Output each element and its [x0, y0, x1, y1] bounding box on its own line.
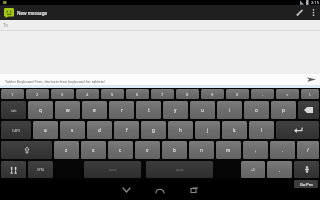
- button[interactable]: l: [249, 121, 274, 139]
- button[interactable]: tab: [1, 101, 26, 119]
- button[interactable]: -: [251, 89, 274, 99]
- staticText: New message: [17, 10, 48, 16]
- staticText: m: [226, 147, 231, 153]
- button[interactable]: =: [276, 89, 299, 99]
- staticText: 5: [111, 92, 114, 97]
- button[interactable]: 2: [26, 89, 49, 99]
- button[interactable]: e: [82, 101, 107, 119]
- button[interactable]: \: [301, 89, 319, 99]
- button[interactable]: z: [54, 141, 79, 159]
- button[interactable]: :-): [241, 161, 265, 178]
- staticText: a: [44, 127, 47, 133]
- button[interactable]: 5: [101, 89, 124, 99]
- button[interactable]: Messaging app: [4, 8, 14, 18]
- button[interactable]: n: [189, 141, 214, 159]
- button[interactable]: 9: [201, 89, 224, 99]
- button[interactable]: r: [109, 101, 134, 119]
- staticText: d: [98, 127, 101, 133]
- button[interactable]: g: [141, 121, 166, 139]
- button[interactable]: 3: [51, 89, 74, 99]
- staticText: =: [286, 92, 289, 97]
- button[interactable]: Voice input: [1, 161, 26, 178]
- staticText: r: [121, 107, 123, 113]
- button[interactable]: Attach file: [291, 5, 307, 20]
- staticText: 2: [36, 92, 39, 97]
- button[interactable]: Go Pro: [294, 180, 318, 188]
- staticText: c: [119, 147, 122, 153]
- staticText: 2:15: [311, 0, 319, 5]
- staticText: 0: [236, 92, 239, 97]
- button[interactable]: p: [271, 101, 296, 119]
- button[interactable]: u: [190, 101, 215, 119]
- button[interactable]: s: [60, 121, 85, 139]
- button[interactable]: 4: [76, 89, 99, 99]
- button[interactable]: 7: [151, 89, 174, 99]
- staticText: b: [173, 147, 176, 153]
- button[interactable]: t: [136, 101, 161, 119]
- button[interactable]: 8: [176, 89, 199, 99]
- staticText: .: [282, 147, 284, 153]
- staticText: q: [39, 107, 42, 113]
- button[interactable]: v: [135, 141, 160, 159]
- button[interactable]: Resize keyboard: [294, 161, 319, 178]
- button[interactable]: a: [33, 121, 58, 139]
- staticText: n: [200, 147, 203, 153]
- staticText: To: [3, 22, 8, 28]
- staticText: -: [262, 92, 264, 97]
- button[interactable]: i: [217, 101, 242, 119]
- button[interactable]: j: [195, 121, 220, 139]
- button[interactable]: b: [162, 141, 187, 159]
- staticText: :-): [251, 167, 255, 172]
- button[interactable]: /: [297, 141, 319, 159]
- staticText: f: [126, 127, 128, 133]
- button[interactable]: m: [216, 141, 241, 159]
- staticText: x: [92, 147, 95, 153]
- staticText: ,: [255, 147, 257, 153]
- staticText: Tablet Keyboard Free, the best free keyb…: [5, 79, 105, 84]
- staticText: 3: [61, 92, 64, 97]
- staticText: u: [201, 107, 204, 113]
- button[interactable]: ,: [243, 141, 268, 159]
- staticText: .: [279, 167, 281, 173]
- staticText: CAPS: [12, 128, 21, 133]
- button[interactable]: Shift: [1, 141, 52, 159]
- button[interactable]: Home: [149, 181, 171, 199]
- button[interactable]: Send: [302, 74, 320, 85]
- button[interactable]: 1: [1, 89, 24, 99]
- button[interactable]: k: [222, 121, 247, 139]
- button[interactable]: 0: [226, 89, 249, 99]
- button[interactable]: CAPS: [1, 121, 31, 139]
- button[interactable]: x: [81, 141, 106, 159]
- staticText: space: [109, 168, 117, 172]
- button[interactable]: SYM: [28, 161, 53, 178]
- staticText: j: [207, 127, 209, 133]
- button[interactable]: f: [114, 121, 139, 139]
- button[interactable]: y: [163, 101, 188, 119]
- button[interactable]: o: [244, 101, 269, 119]
- button[interactable]: More options: [307, 5, 319, 20]
- button[interactable]: h: [168, 121, 193, 139]
- staticText: y: [174, 107, 177, 113]
- button[interactable]: Backspace: [298, 101, 319, 119]
- staticText: g: [152, 127, 155, 133]
- button[interactable]: Recent apps: [183, 181, 205, 199]
- staticText: 7: [161, 92, 164, 97]
- button[interactable]: c: [108, 141, 133, 159]
- staticText: 1: [11, 92, 14, 97]
- button[interactable]: d: [87, 121, 112, 139]
- staticText: t: [148, 107, 150, 113]
- staticText: s: [71, 127, 74, 133]
- button[interactable]: .: [270, 141, 295, 159]
- staticText: SYM: [37, 167, 44, 172]
- button[interactable]: q: [28, 101, 53, 119]
- button[interactable]: Enter: [276, 121, 319, 139]
- button[interactable]: Back: [115, 181, 137, 199]
- button[interactable]: 6: [126, 89, 149, 99]
- button[interactable]: .: [267, 161, 292, 178]
- button[interactable]: space: [146, 161, 213, 178]
- button[interactable]: space: [84, 161, 141, 178]
- button[interactable]: w: [55, 101, 80, 119]
- staticText: e: [93, 107, 96, 113]
- staticText: w: [66, 107, 70, 113]
